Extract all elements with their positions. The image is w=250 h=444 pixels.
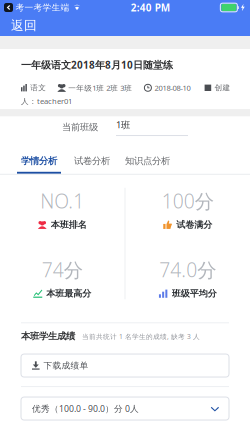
staticText: 本班最高分 [46,288,91,299]
button[interactable]: 知识点分析 [121,155,174,174]
staticText: 学情分析 [21,155,57,167]
staticText: 优秀（100.0 - 90.0）分 0人 [32,403,139,414]
staticText: 人：teacher01 [21,96,72,106]
button[interactable]: 返回 [0,15,47,36]
staticText: 考一考学生端 [15,2,69,13]
staticText: 当前班级 [62,121,98,133]
staticText: 1班 [116,118,130,131]
staticText: 本班排名 [51,219,87,230]
staticText: 试卷满分 [176,219,212,230]
staticText: 下载成绩单 [44,360,89,371]
staticText: 2:40 PM [131,1,170,14]
staticText: 当前共统计 1 名学生的成绩, 缺考 3 人 [82,332,200,341]
staticText: 一年级1班 2班 3班 [68,83,132,93]
staticText: 语文 [30,83,46,93]
staticText: 一年级语文2018年8月10日随堂练 [21,58,173,72]
staticText: 100分 [162,188,214,214]
staticText: 74.0分 [159,256,216,283]
staticText: 试卷分析 [74,155,110,167]
button[interactable]: 学情分析 [17,155,61,174]
staticText: 知识点分析 [125,155,170,167]
button[interactable]: 试卷分析 [70,155,114,174]
staticText: 返回 [11,17,37,33]
staticText: 本班学生成绩 [21,330,75,342]
staticText: NO.1 [40,188,84,214]
staticText: 创建 [214,83,230,93]
button[interactable]: 下载成绩单 [21,354,229,377]
staticText: 班级平均分 [172,288,217,299]
staticText: 2018-08-10 [155,83,191,93]
button[interactable]: 优秀（100.0 - 90.0）分 0人 [21,397,229,420]
staticText: 74分 [42,256,83,283]
